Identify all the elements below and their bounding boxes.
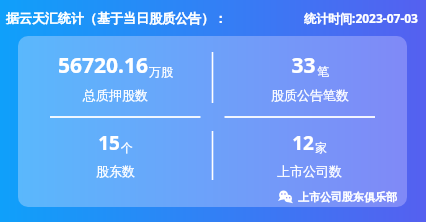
button[interactable]: 12 [212, 119, 407, 189]
button[interactable]: 56720.16 [18, 36, 212, 117]
button[interactable]: 上市公司股东俱乐部 WeChat [278, 189, 397, 204]
staticText: 万股 [149, 64, 173, 79]
staticText: 12 [292, 130, 314, 156]
staticText: 个 [121, 140, 133, 155]
staticText: 总质押股数 [83, 87, 148, 103]
staticText: 据云天汇统计（基于当日股质公告）： [6, 10, 227, 26]
staticText: 股东数 [96, 163, 135, 179]
button[interactable]: 33 [212, 36, 407, 117]
staticText: 上市公司股东俱乐部 [298, 190, 397, 204]
staticText: 56720.16 [58, 51, 148, 80]
staticText: 统计时间:2023-07-03 [304, 10, 418, 26]
staticText: 家 [315, 140, 327, 155]
staticText: 股质公告笔数 [271, 87, 349, 103]
staticText: 笔 [317, 64, 329, 79]
staticText: 上市公司数 [277, 163, 342, 179]
staticText: 33 [291, 51, 316, 80]
staticText: 15 [98, 130, 120, 156]
button[interactable]: 15 [18, 119, 212, 189]
